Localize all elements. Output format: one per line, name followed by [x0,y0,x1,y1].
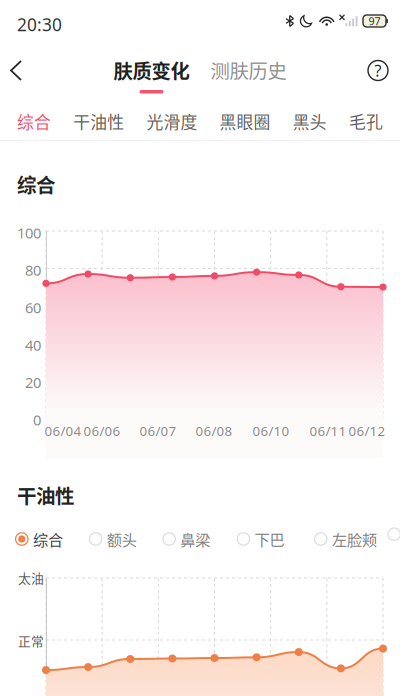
staticText: 06/04 [44,422,81,440]
staticText: 20:30 [17,13,62,36]
button[interactable]: 干油性 [73,100,124,142]
button[interactable]: 肤质变化 [113,56,189,93]
staticText: 综合 [17,170,55,198]
button[interactable]: 左脸颊 [314,525,377,553]
staticText: 06/10 [252,422,289,440]
staticText: 06/07 [139,422,176,440]
button[interactable]: 光滑度 [146,100,197,142]
staticText: 0 [33,410,41,429]
staticText: 20 [25,373,41,392]
button[interactable]: 综合 [17,100,51,142]
staticText: 测肤历史 [210,56,286,84]
staticText: 06/12 [348,422,385,440]
staticText: 肤质变化 [113,56,189,84]
button[interactable]: 额头 [89,525,137,553]
staticText: 综合 [33,528,63,550]
staticText: 光滑度 [146,109,197,133]
staticText: 干油性 [73,109,124,133]
staticText: 06/11 [309,422,346,440]
staticText: 06/08 [195,422,232,440]
button[interactable]: 黑眼圈 [220,100,271,142]
staticText: 黑头 [293,109,327,133]
staticText: 黑眼圈 [220,109,271,133]
button[interactable]: 综合 [16,525,63,553]
button[interactable]: Help [354,48,400,92]
staticText: 毛孔 [349,109,383,133]
button[interactable] [388,525,400,543]
button[interactable]: 测肤历史 [210,56,286,93]
staticText: 97 [368,14,380,28]
staticText: 40 [25,335,41,355]
staticText: 正常 [18,631,44,650]
staticText: 鼻梁 [180,528,210,550]
staticText: 60 [25,298,41,317]
button[interactable]: 黑头 [293,100,327,142]
staticText: 100 [17,223,41,242]
staticText: 06/06 [83,422,120,440]
staticText: 左脸颊 [332,528,377,550]
staticText: 综合 [17,109,51,133]
button[interactable]: 毛孔 [349,100,383,142]
button[interactable]: 鼻梁 [163,525,210,553]
button[interactable]: Back [0,48,36,93]
button[interactable]: 下巴 [237,525,285,553]
staticText: 干油性 [17,481,74,509]
staticText: 太油 [18,568,44,587]
staticText: 80 [25,260,41,280]
staticText: 额头 [107,528,137,550]
staticText: ? [374,60,381,81]
staticText: 下巴 [255,528,285,550]
